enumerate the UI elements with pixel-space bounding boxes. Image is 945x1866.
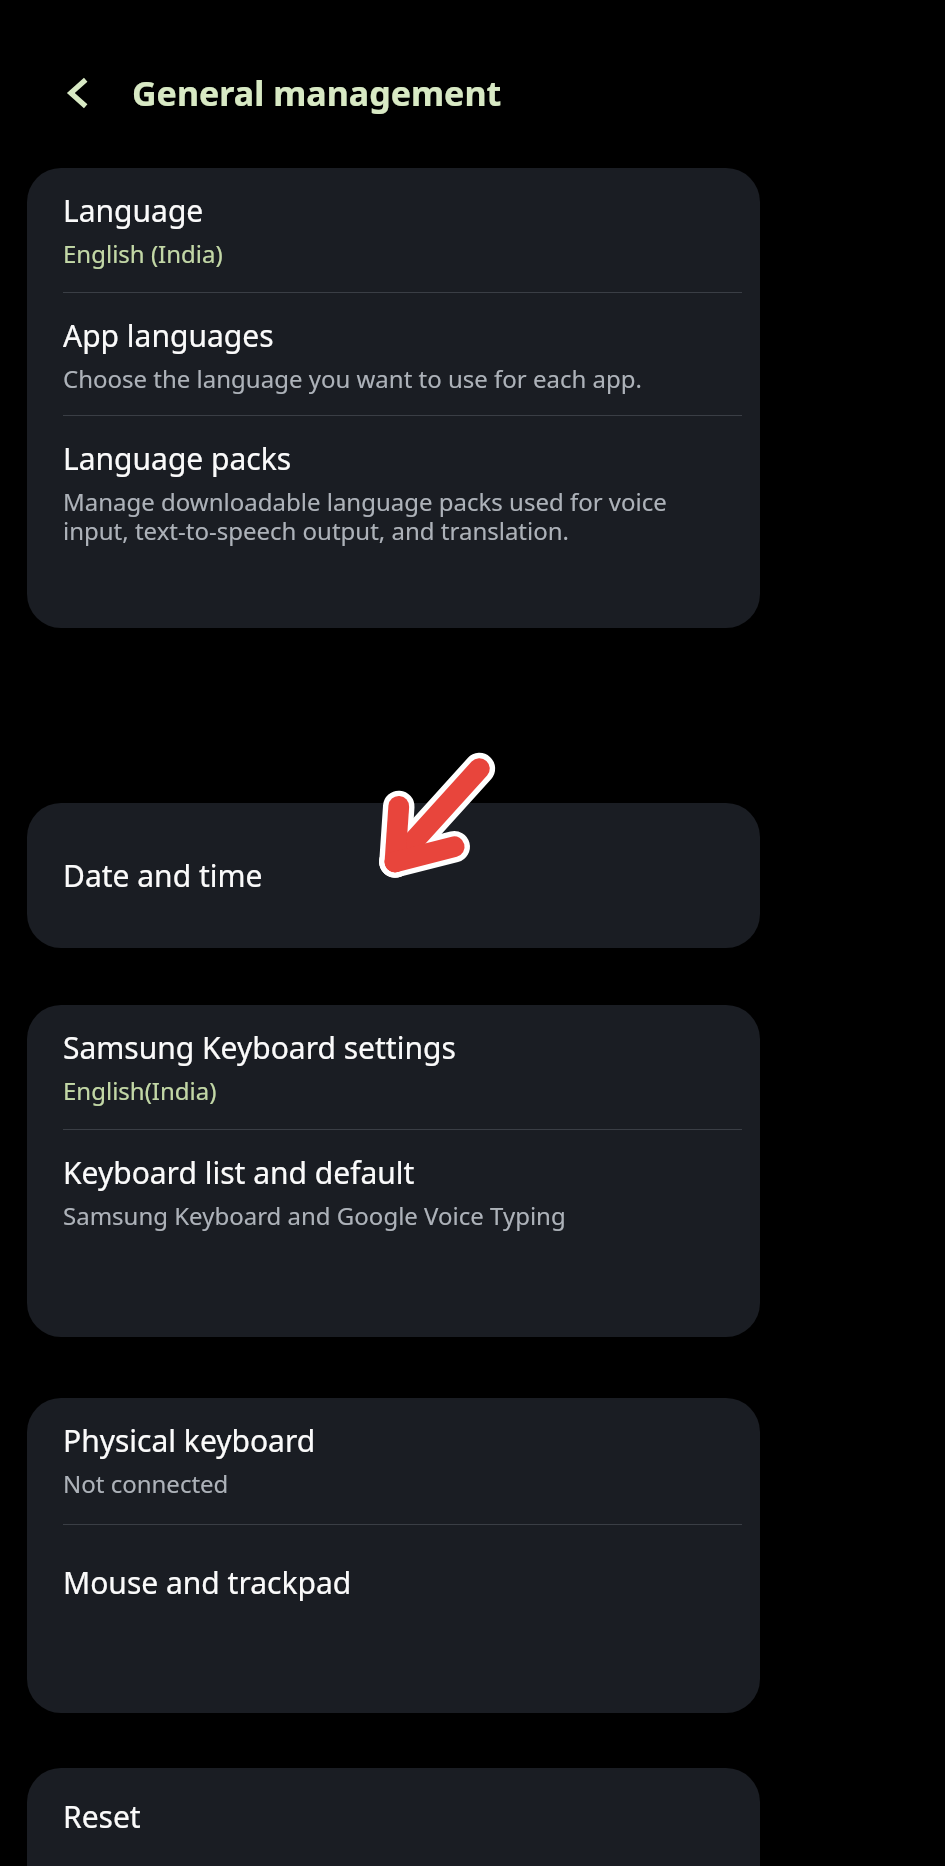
- button[interactable]: Date and time: [27, 803, 760, 948]
- staticText: Reset: [63, 1796, 141, 1837]
- staticText: Not connected: [63, 1467, 229, 1500]
- button[interactable]: Back: [48, 63, 108, 123]
- staticText: Samsung Keyboard and Google Voice Typing: [63, 1199, 566, 1232]
- button[interactable]: Language: [27, 190, 760, 270]
- staticText: Manage downloadable language packs used …: [63, 485, 734, 547]
- staticText: Language packs: [63, 438, 292, 479]
- staticText: App languages: [63, 315, 274, 356]
- button[interactable]: Physical keyboard: [27, 1420, 760, 1500]
- staticText: Keyboard list and default: [63, 1152, 415, 1193]
- staticText: Date and time: [63, 855, 263, 896]
- staticText: General management: [132, 70, 502, 116]
- staticText: Mouse and trackpad: [63, 1562, 352, 1603]
- staticText: Physical keyboard: [63, 1420, 316, 1461]
- button[interactable]: Language packs: [27, 438, 760, 547]
- button[interactable]: Keyboard list and default: [27, 1152, 760, 1232]
- staticText: Language: [63, 190, 204, 231]
- button[interactable]: Samsung Keyboard settings: [27, 1027, 760, 1107]
- staticText: English (India): [63, 237, 223, 270]
- staticText: Samsung Keyboard settings: [63, 1027, 456, 1068]
- button[interactable]: App languages: [27, 315, 760, 395]
- button[interactable]: Mouse and trackpad: [27, 1549, 760, 1615]
- staticText: English(India): [63, 1074, 217, 1107]
- staticText: Choose the language you want to use for …: [63, 362, 643, 395]
